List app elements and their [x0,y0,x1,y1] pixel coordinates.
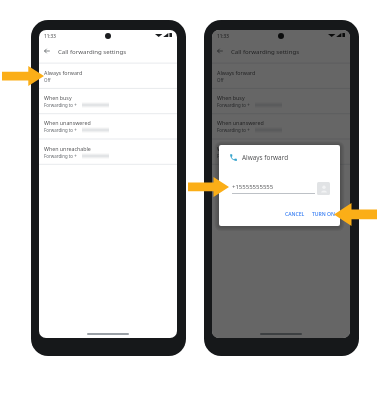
button[interactable]: Pick contact [317,182,330,195]
staticText: +15555555555 [232,183,274,191]
staticText: 11:33 [44,33,56,39]
button[interactable]: Always forward [212,63,350,88]
staticText: Forwarding to + [217,127,250,133]
button[interactable]: TURN ON [309,208,339,221]
staticText: When unanswered [217,119,264,126]
button[interactable]: Back [214,45,226,57]
staticText: TURN ON [312,211,336,218]
staticText: Always forward [217,69,256,76]
staticText: When busy [217,94,245,101]
button[interactable]: When busy [39,88,177,113]
button[interactable]: When unreachable [212,139,350,164]
staticText: Forwarding to + [217,153,250,159]
staticText: When unreachable [44,145,91,152]
staticText: 11:33 [217,33,229,39]
button[interactable]: Back [41,45,53,57]
staticText: Off [44,77,51,83]
button[interactable]: When busy [212,88,350,113]
button[interactable]: When unanswered [39,113,177,138]
staticText: Off [217,77,224,83]
staticText: When busy [44,94,72,101]
button[interactable]: When unreachable [39,139,177,164]
staticText: Call forwarding settings [231,47,300,55]
button[interactable]: When unanswered [212,113,350,138]
staticText: Always forward [242,153,289,162]
staticText: Forwarding to + [44,153,77,159]
staticText: Forwarding to + [44,102,77,108]
staticText: When unanswered [44,119,91,126]
staticText: Call forwarding settings [58,47,127,55]
button[interactable]: CANCEL [282,208,308,221]
button[interactable]: Always forward [39,63,177,88]
staticText: When unreachable [217,145,264,152]
staticText: Forwarding to + [44,127,77,133]
staticText: Always forward [44,69,83,76]
staticText: Forwarding to + [217,102,250,108]
staticText: CANCEL [285,211,305,218]
